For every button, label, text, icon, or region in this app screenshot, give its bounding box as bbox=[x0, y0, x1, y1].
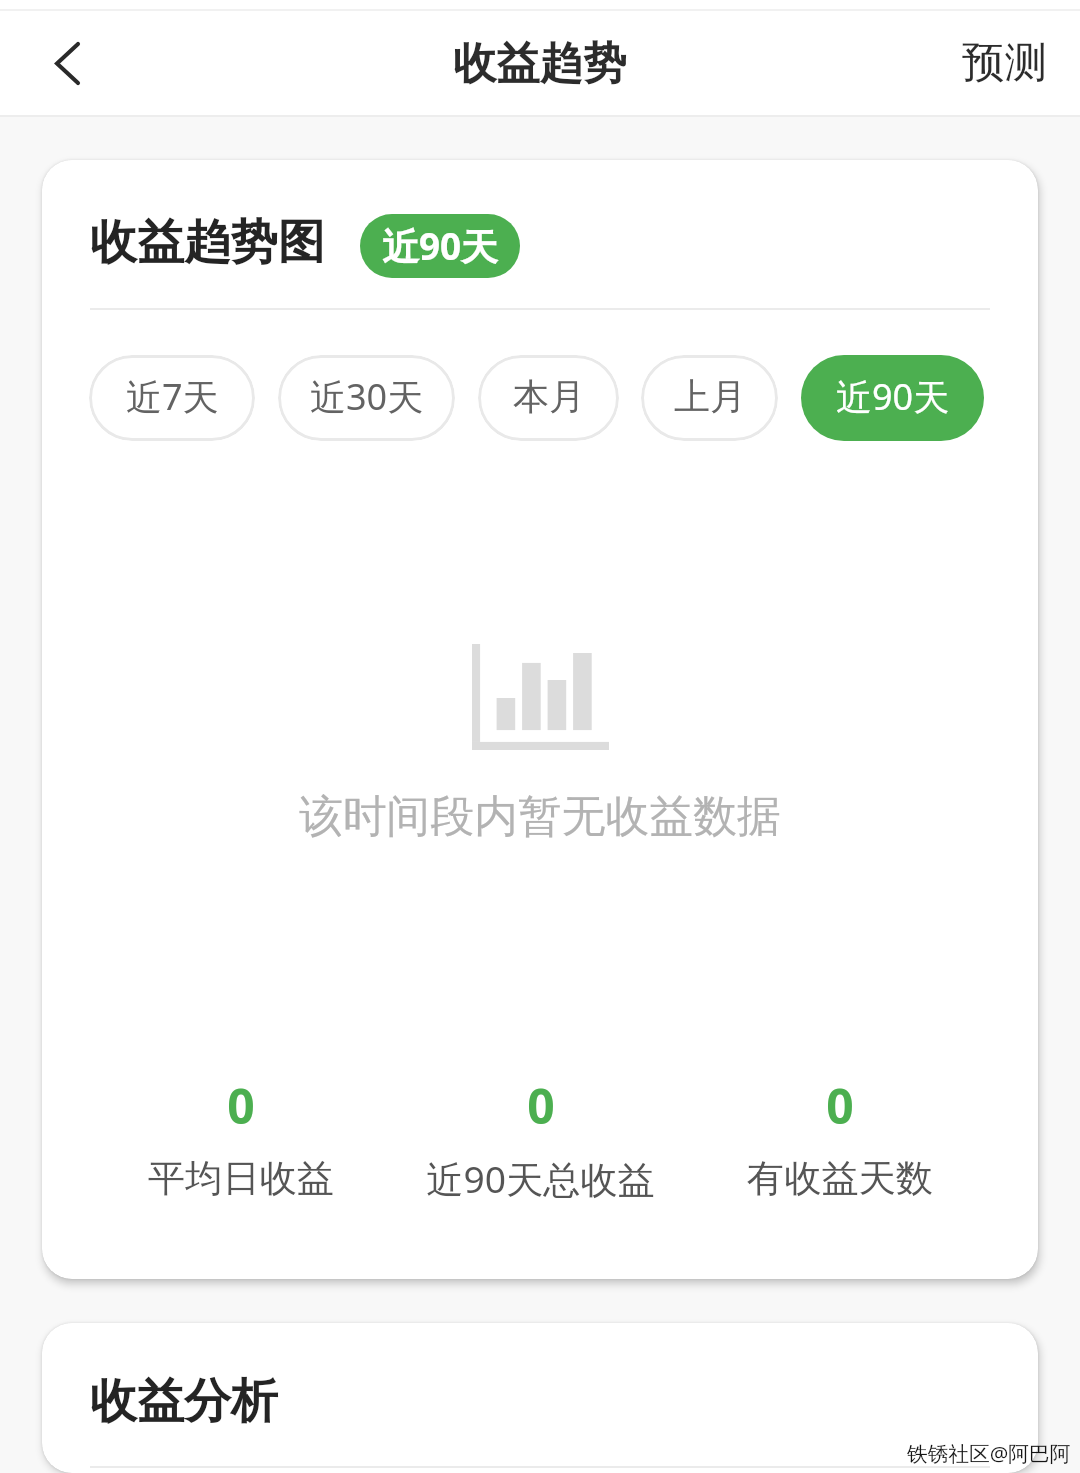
button[interactable]: Back bbox=[0, 11, 134, 115]
staticText: 收益趋势图 bbox=[90, 213, 325, 272]
staticText: 该时间段内暂无收益数据 bbox=[299, 789, 781, 844]
staticText: 近90天总收益 bbox=[426, 1151, 655, 1207]
button[interactable]: 近7天 bbox=[89, 355, 255, 441]
staticText: 上月 bbox=[674, 374, 746, 419]
staticText: 0 bbox=[826, 1073, 854, 1138]
staticText: 近90天 bbox=[836, 372, 950, 421]
button[interactable]: 近90天 bbox=[801, 355, 984, 441]
staticText: 铁锈社区@阿巴阿 bbox=[907, 1439, 1071, 1467]
staticText: 近7天 bbox=[126, 372, 219, 421]
staticText: 预测 bbox=[962, 36, 1048, 90]
staticText: 近90天 bbox=[382, 221, 498, 271]
staticText: 0 bbox=[527, 1073, 555, 1138]
staticText: 近30天 bbox=[310, 372, 424, 421]
staticText: 平均日收益 bbox=[148, 1151, 334, 1205]
button[interactable]: 上月 bbox=[641, 355, 778, 441]
staticText: 本月 bbox=[513, 374, 585, 419]
button[interactable]: 近30天 bbox=[278, 355, 455, 441]
button[interactable]: 预测 bbox=[920, 11, 1080, 115]
staticText: 0 bbox=[227, 1073, 255, 1138]
staticText: 收益趋势 bbox=[453, 36, 627, 91]
staticText: 有收益天数 bbox=[747, 1151, 933, 1205]
staticText: 收益分析 bbox=[90, 1372, 278, 1431]
button[interactable]: 本月 bbox=[478, 355, 619, 441]
